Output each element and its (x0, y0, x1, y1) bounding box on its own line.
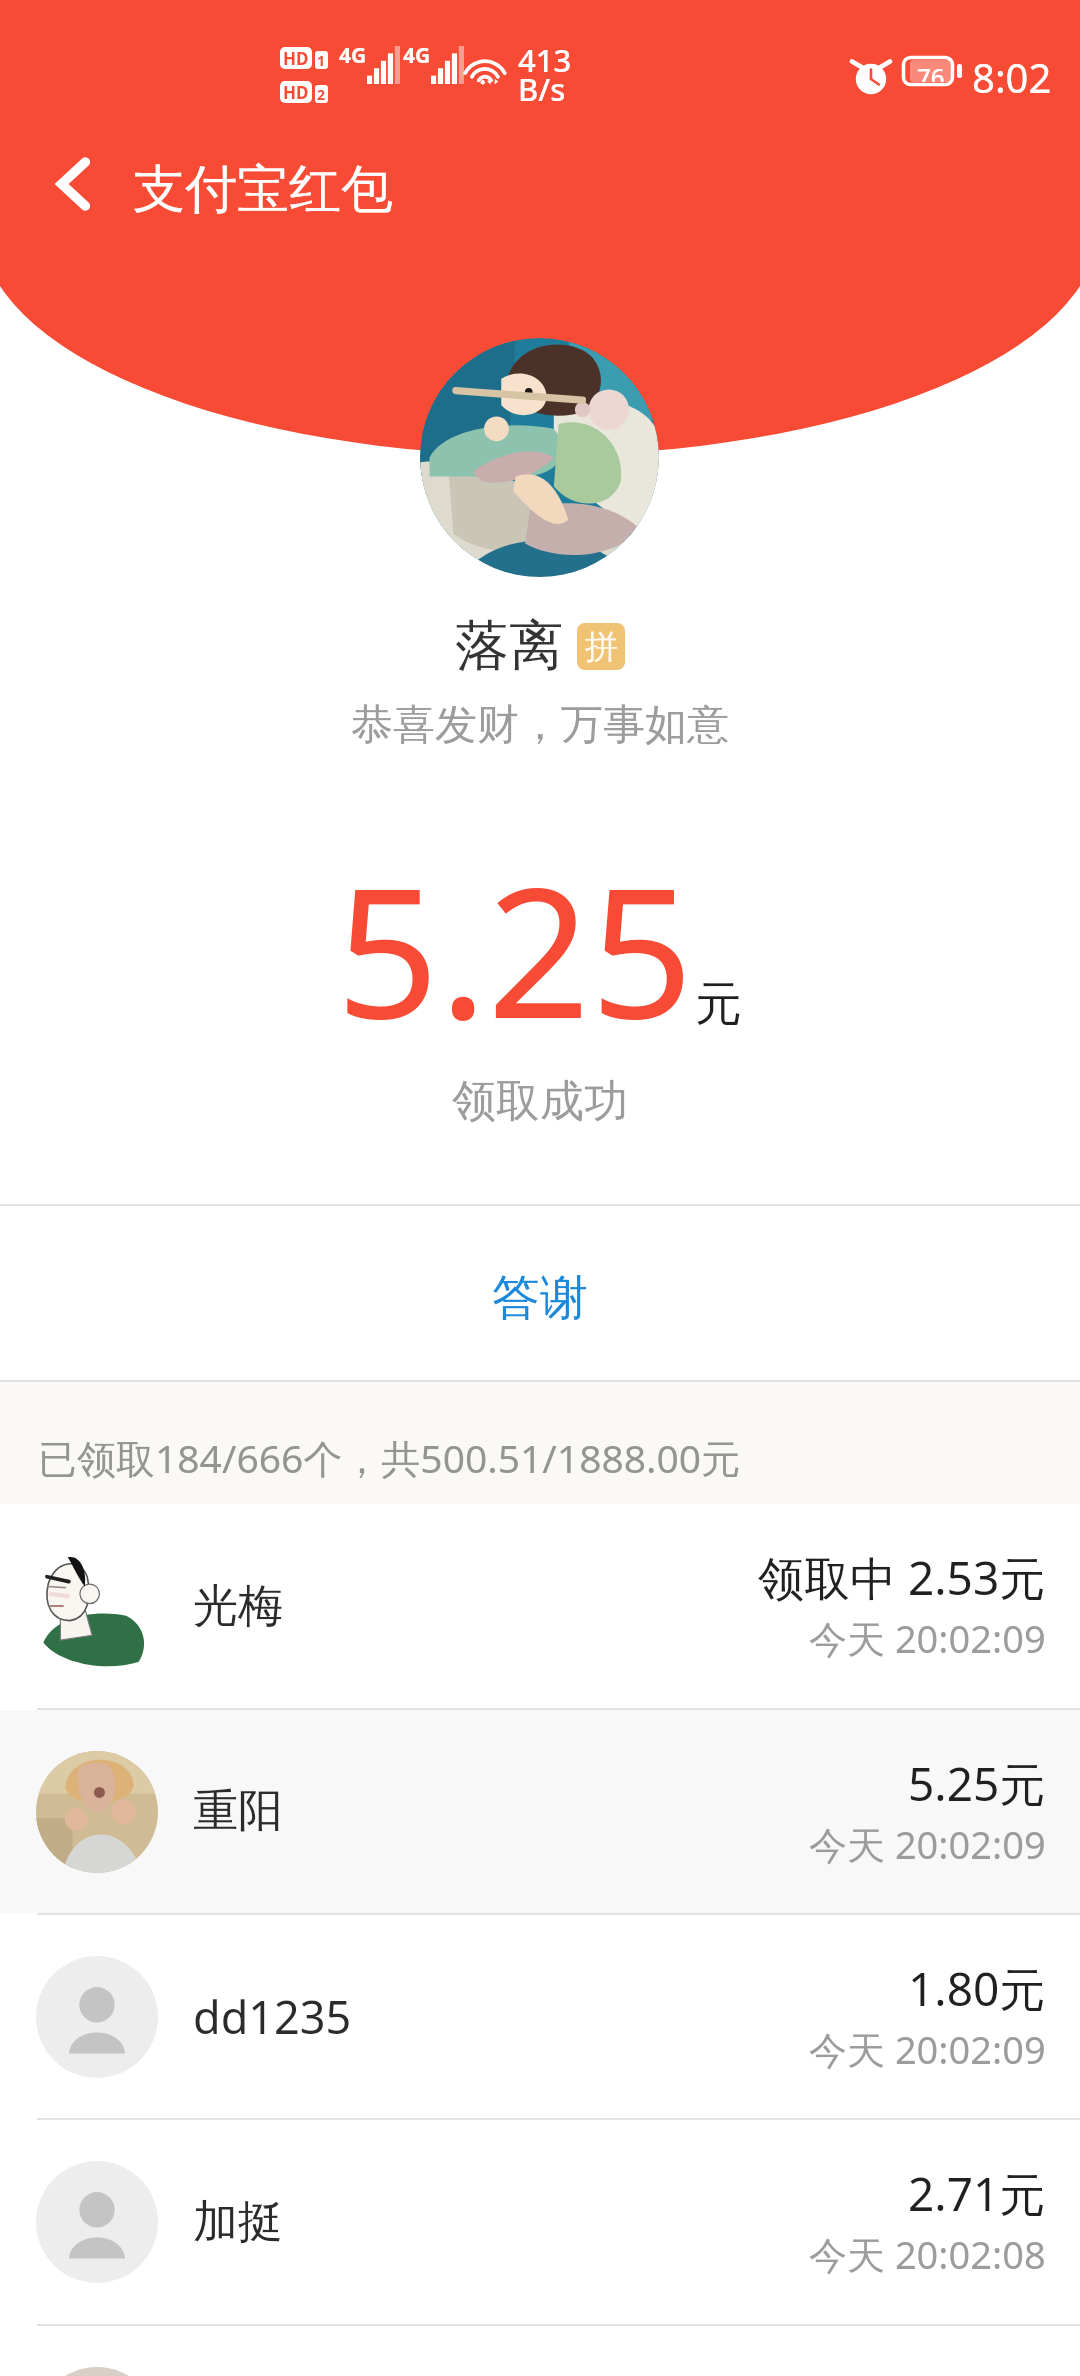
button[interactable]: 加挺 (0, 2120, 1080, 2324)
staticText: 今天 20:02:09 (809, 1612, 1046, 1664)
staticText: 已领取184/666个，共500.51/1888.00元 (38, 1431, 741, 1484)
staticText: 落离 (455, 612, 563, 680)
button[interactable]: 小鱼 (0, 2326, 1080, 2376)
staticText: 4G (339, 41, 367, 70)
staticText: HD (283, 47, 309, 69)
staticText: 5.25元 (908, 1752, 1046, 1815)
staticText: 1 (317, 51, 326, 69)
staticText: 今天 20:02:08 (809, 2228, 1046, 2280)
staticText: 支付宝红包 (133, 157, 393, 223)
staticText: 413 (518, 39, 572, 81)
button[interactable]: Back (16, 130, 131, 238)
staticText: 5.25 (336, 826, 694, 1071)
staticText: 领取成功 (452, 1074, 628, 1129)
staticText: 恭喜发财，万事如意 (351, 699, 729, 752)
staticText: 光梅 (193, 1578, 283, 1635)
staticText: dd1235 (193, 1986, 352, 2047)
staticText: HD (283, 81, 309, 103)
staticText: 今天 20:02:09 (809, 2023, 1046, 2075)
button[interactable]: 光梅 (0, 1504, 1080, 1708)
staticText: 2 (317, 85, 326, 103)
staticText: 领取中 2.53元 (758, 1546, 1046, 1609)
staticText: 4G (403, 41, 431, 70)
staticText: B/s (518, 68, 566, 110)
staticText: 76 (917, 60, 945, 82)
staticText: 8:02 (972, 50, 1052, 104)
staticText: 重阳 (193, 1783, 283, 1840)
button[interactable]: 重阳 (0, 1710, 1080, 1913)
staticText: 加挺 (193, 2194, 283, 2251)
button[interactable]: Sender avatar (420, 338, 659, 577)
staticText: 元 (695, 975, 742, 1034)
staticText: 今天 20:02:09 (809, 1818, 1046, 1870)
staticText: 答谢 (492, 1268, 588, 1328)
staticText: 1.80元 (908, 1957, 1046, 2020)
button[interactable]: 答谢 (0, 1204, 1080, 1380)
staticText: 2.71元 (908, 2162, 1046, 2225)
button[interactable]: dd1235 (0, 1915, 1080, 2118)
staticText: 拼 (585, 626, 618, 668)
